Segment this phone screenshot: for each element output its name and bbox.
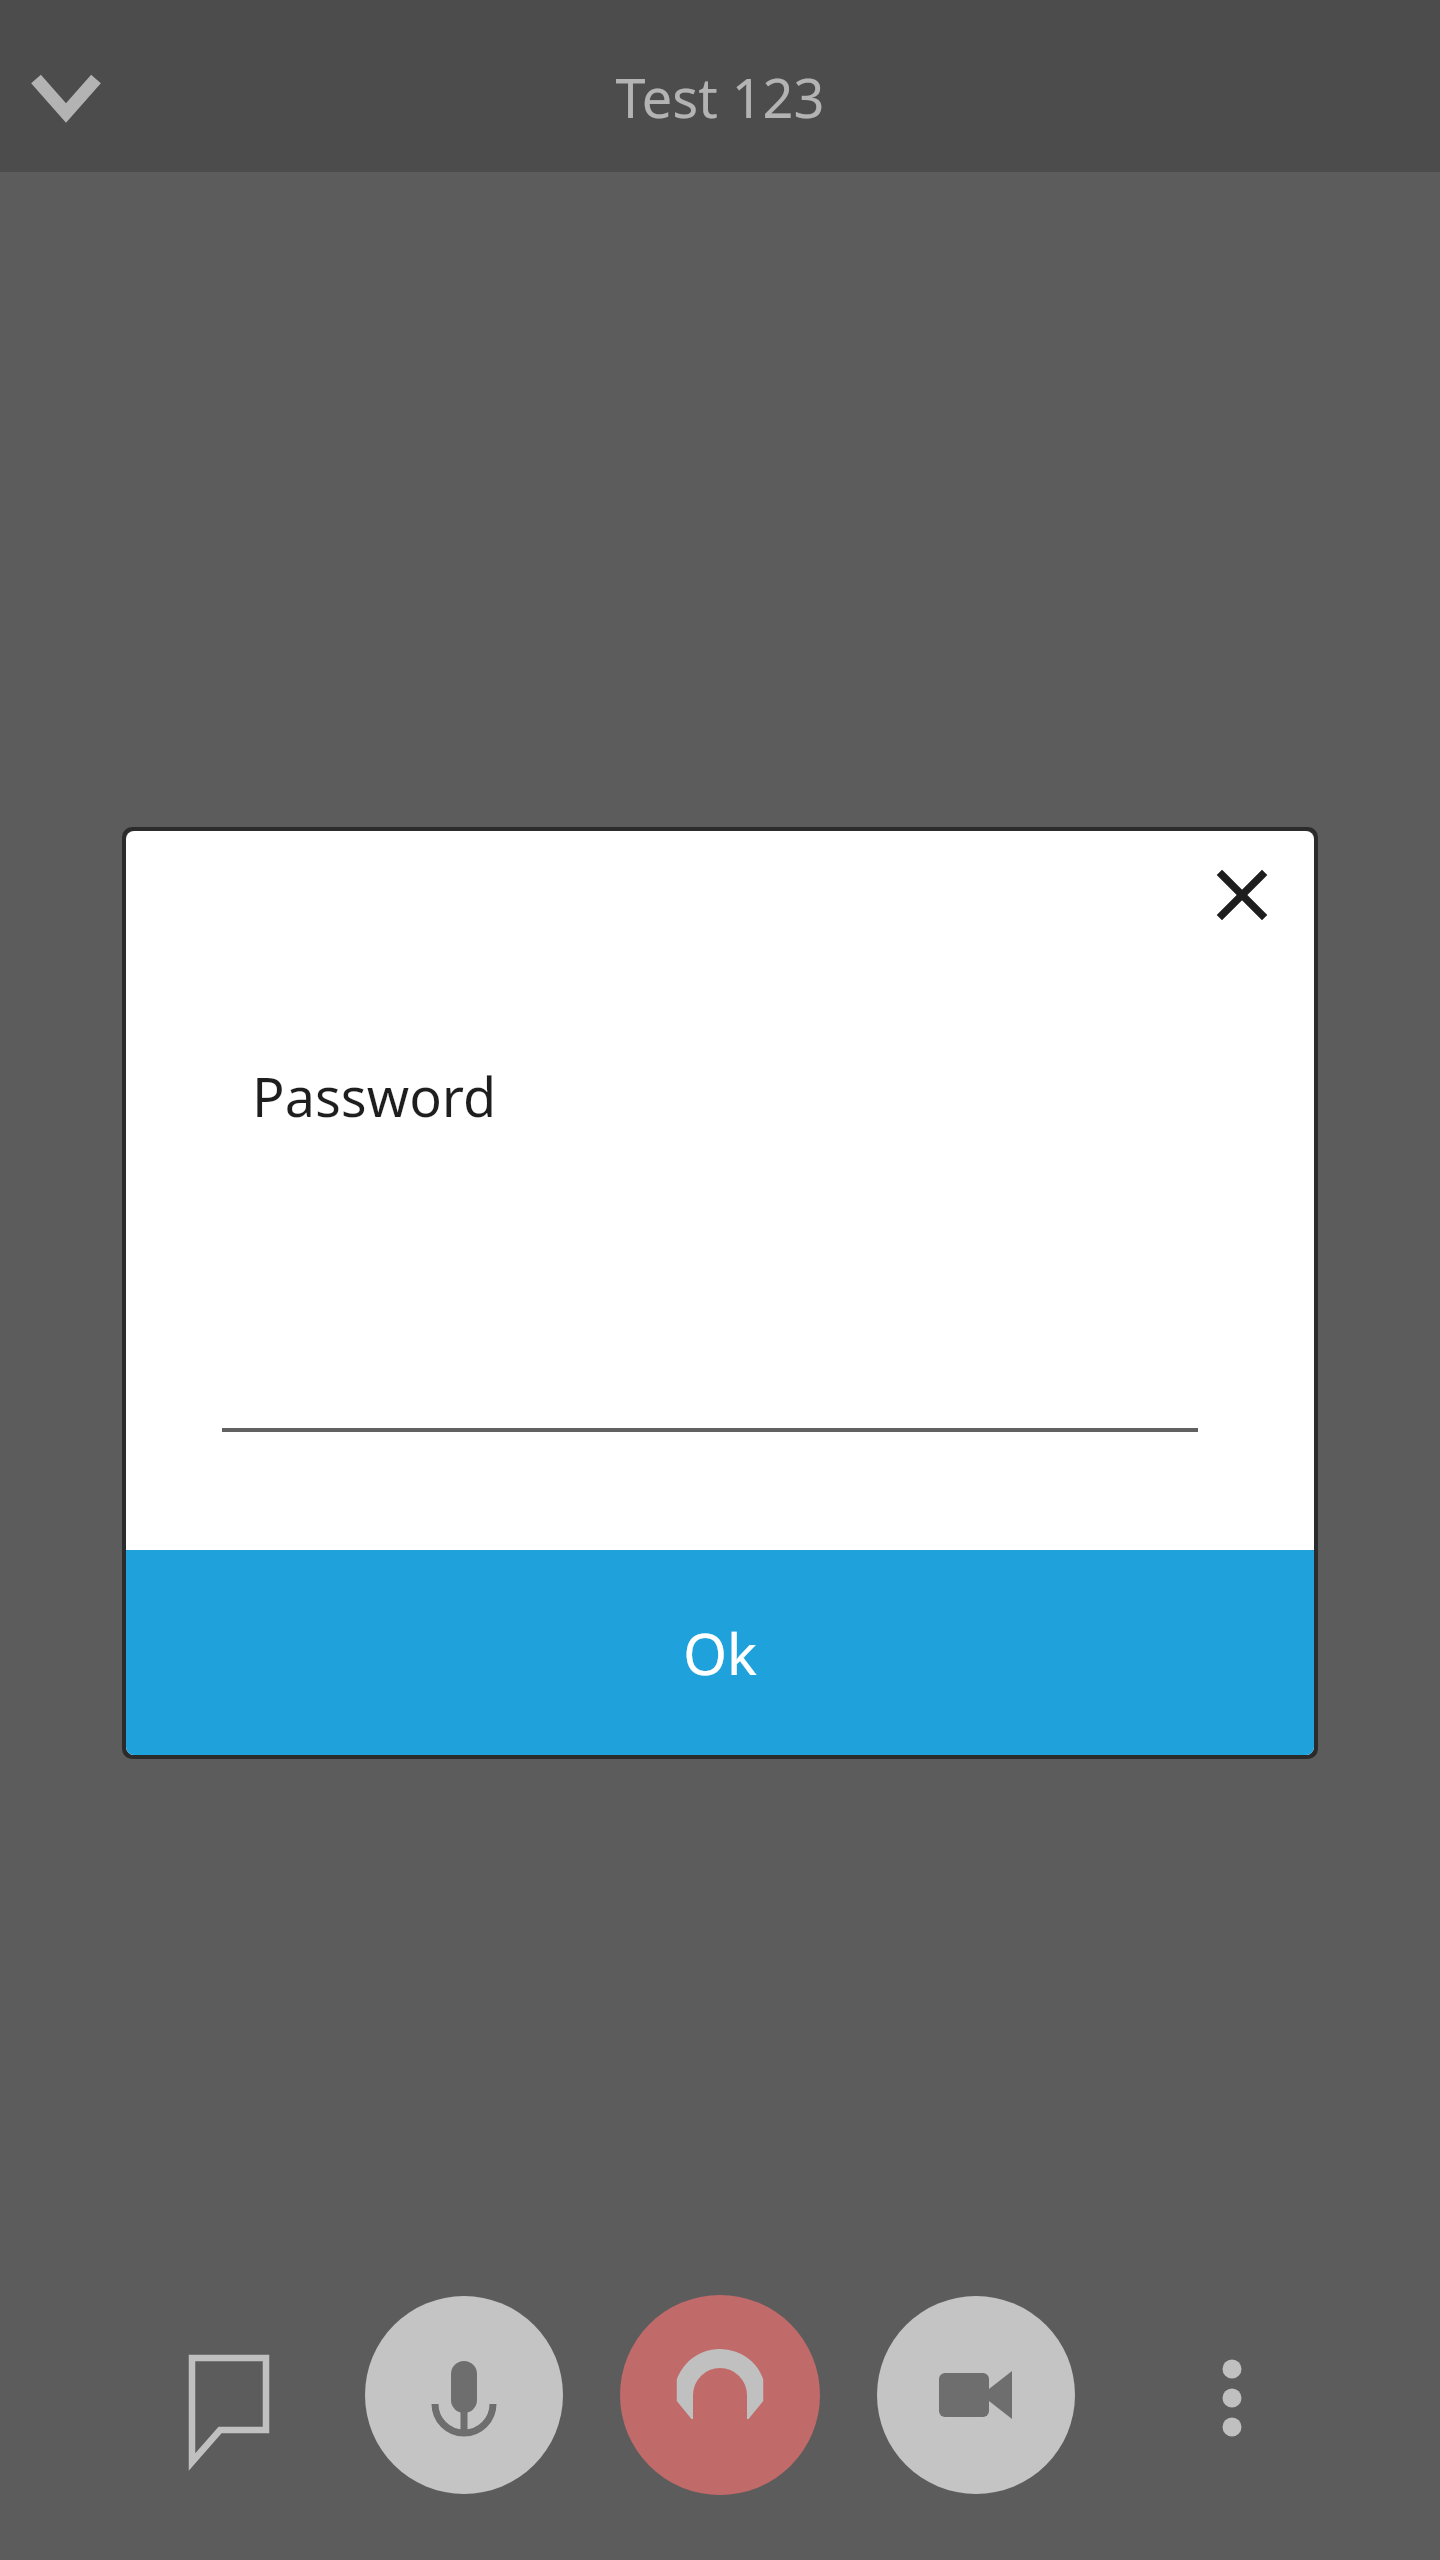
- button[interactable]: Ok: [126, 1550, 1314, 1755]
- staticText: Ok: [683, 1615, 757, 1691]
- button[interactable]: End call: [620, 2295, 820, 2495]
- staticText: Test 123: [0, 60, 1440, 134]
- button[interactable]: Toggle video: [877, 2296, 1075, 2494]
- button[interactable]: Chat: [148, 2330, 276, 2458]
- button[interactable]: Close: [1194, 847, 1290, 943]
- button[interactable]: Collapse: [18, 48, 114, 144]
- staticText: Password: [252, 1059, 497, 1133]
- button[interactable]: Mute microphone: [365, 2296, 563, 2494]
- button[interactable]: More options: [1172, 2335, 1292, 2455]
